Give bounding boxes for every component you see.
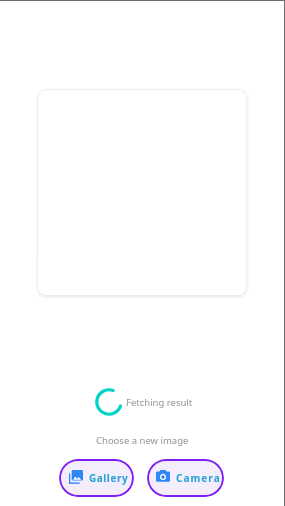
staticText: Camera bbox=[176, 471, 221, 485]
staticText: Gallery bbox=[89, 471, 129, 485]
button[interactable]: Camera bbox=[147, 459, 224, 497]
staticText: Choose a new image bbox=[96, 434, 189, 447]
staticText: Fetching result bbox=[126, 396, 193, 409]
button[interactable]: Gallery bbox=[59, 459, 134, 497]
